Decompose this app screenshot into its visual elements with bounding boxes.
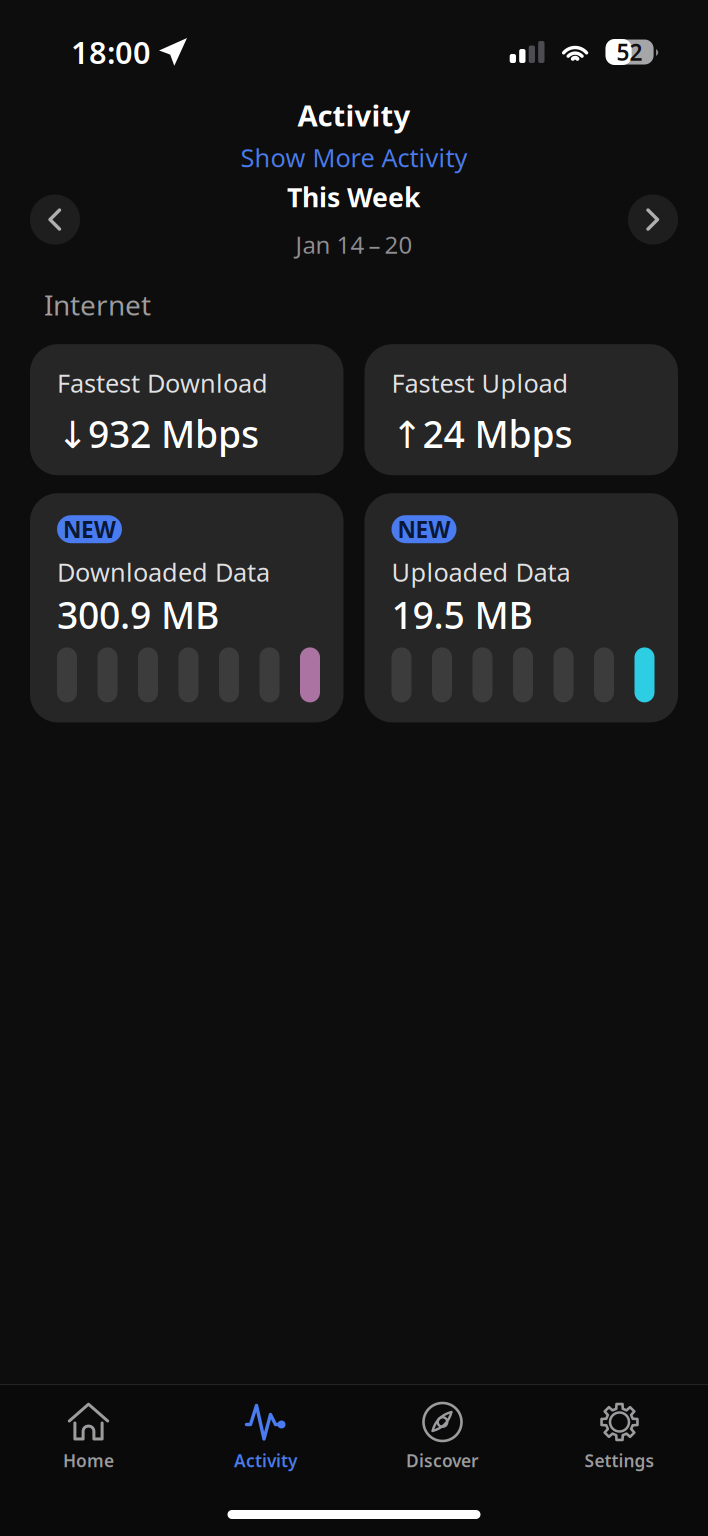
staticText: NEW xyxy=(397,514,450,544)
button[interactable]: Show More Activity xyxy=(240,140,467,174)
staticText: NEW xyxy=(63,514,116,544)
staticText: Activity xyxy=(234,1449,297,1472)
staticText: Discover xyxy=(406,1449,479,1472)
button[interactable]: Fastest Download xyxy=(30,344,343,475)
staticText: 18:00 xyxy=(71,32,151,72)
button[interactable]: Discover xyxy=(354,1398,531,1476)
staticText: Fastest Download xyxy=(57,366,268,400)
staticText: Downloaded Data xyxy=(57,555,270,589)
staticText: Uploaded Data xyxy=(391,555,570,589)
button[interactable]: Activity xyxy=(177,1398,354,1476)
staticText: ↑24 Mbps xyxy=(391,409,572,458)
staticText: Settings xyxy=(584,1449,654,1472)
staticText: Home xyxy=(63,1449,114,1472)
staticText: Show More Activity xyxy=(240,140,467,174)
staticText: Activity xyxy=(297,96,410,135)
staticText: 300.9 MB xyxy=(57,590,219,639)
button[interactable]: Home xyxy=(0,1398,177,1476)
staticText: This Week xyxy=(287,179,421,215)
button[interactable]: NEW xyxy=(364,493,678,722)
staticText: Internet xyxy=(44,286,151,323)
staticText: 52 xyxy=(617,37,643,67)
button[interactable]: Settings xyxy=(531,1398,708,1476)
button[interactable]: NEW xyxy=(30,493,343,722)
staticText: Fastest Upload xyxy=(391,366,568,400)
staticText: ↓932 Mbps xyxy=(57,409,259,458)
staticText: Jan 14 – 20 xyxy=(295,229,412,260)
staticText: 19.5 MB xyxy=(391,590,532,639)
button[interactable]: Next week xyxy=(622,189,684,251)
button[interactable]: Fastest Upload xyxy=(364,344,678,475)
button[interactable]: Previous week xyxy=(24,189,86,251)
